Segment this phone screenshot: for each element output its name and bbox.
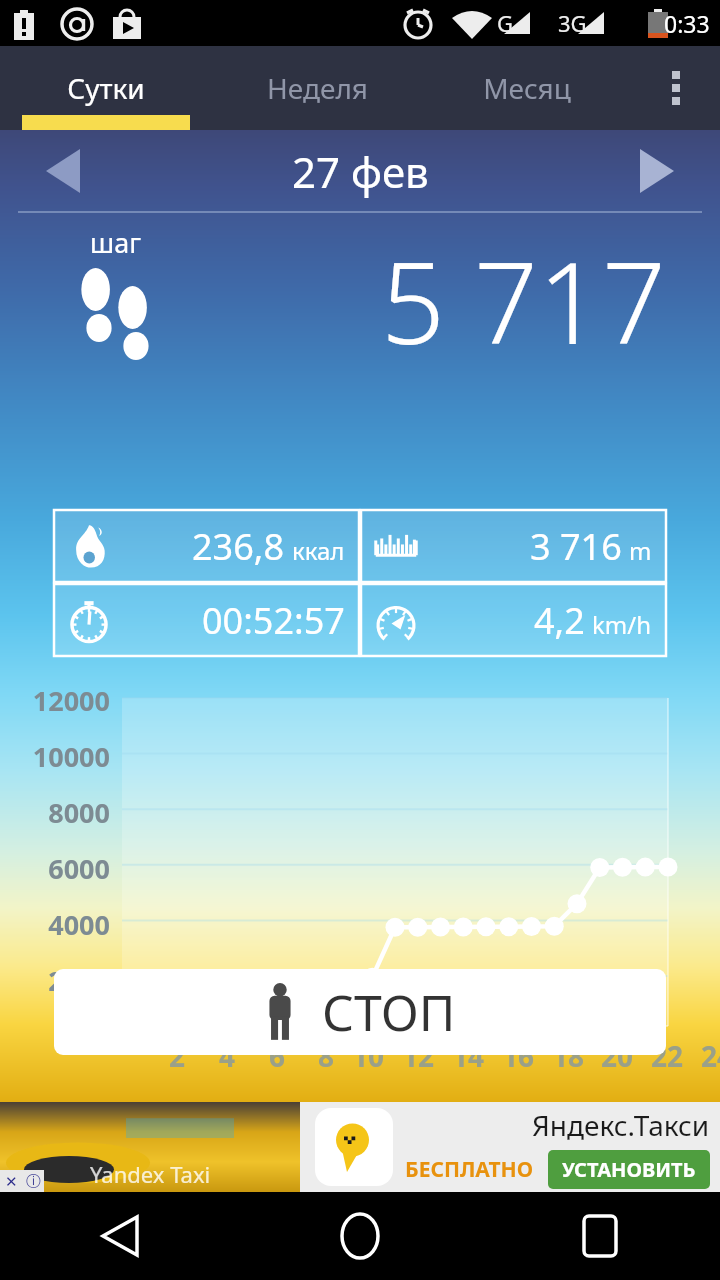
staticText: Месяц bbox=[483, 69, 571, 107]
button[interactable]: Сутки bbox=[0, 46, 212, 130]
staticText: 8 bbox=[318, 1037, 335, 1075]
button[interactable]: СТОП bbox=[54, 969, 666, 1055]
button[interactable]: More options bbox=[632, 46, 720, 130]
staticText: 22 bbox=[651, 1037, 684, 1075]
staticText: 2000 bbox=[48, 962, 110, 999]
staticText: 4,2 bbox=[534, 596, 585, 645]
staticText: 10000 bbox=[32, 738, 110, 775]
staticText: 12000 bbox=[32, 682, 110, 719]
staticText: 6000 bbox=[48, 850, 110, 887]
button[interactable]: УСТАНОВИТЬ bbox=[548, 1150, 710, 1189]
staticText: 16 bbox=[502, 1037, 535, 1075]
staticText: km/h bbox=[592, 608, 652, 641]
staticText: 6 bbox=[269, 1037, 286, 1075]
button[interactable]: Next day bbox=[622, 136, 692, 206]
staticText: Яндекс.Такси bbox=[532, 1106, 710, 1144]
staticText: 10 bbox=[352, 1037, 385, 1075]
button[interactable]: Recent apps bbox=[480, 1192, 720, 1280]
staticText: 18 bbox=[552, 1037, 585, 1075]
staticText: УСТАНОВИТЬ bbox=[562, 1156, 696, 1183]
button[interactable]: Yandex Taxi bbox=[0, 1102, 720, 1192]
staticText: 2 bbox=[169, 1037, 186, 1075]
staticText: 27 фев bbox=[292, 143, 429, 200]
staticText: СТОП bbox=[322, 978, 456, 1046]
staticText: шаг bbox=[90, 224, 141, 261]
button[interactable]: Previous day bbox=[28, 136, 98, 206]
staticText: 8000 bbox=[48, 794, 110, 831]
button[interactable]: Неделя bbox=[212, 46, 422, 130]
staticText: 14 bbox=[452, 1037, 485, 1075]
staticText: 24 bbox=[701, 1037, 720, 1075]
button[interactable]: 3 716 bbox=[361, 510, 666, 582]
staticText: 236,8 bbox=[192, 522, 285, 571]
staticText: 5 717 bbox=[381, 224, 666, 370]
button[interactable]: 00:52:57 bbox=[54, 584, 359, 656]
staticText: ккал bbox=[292, 534, 345, 567]
button[interactable]: Close ad bbox=[0, 1170, 22, 1192]
staticText: БЕСПЛАТНО bbox=[405, 1155, 534, 1184]
staticText: 12 bbox=[402, 1037, 435, 1075]
staticText: ⓘ bbox=[26, 1172, 41, 1191]
button[interactable]: 4,2 bbox=[361, 584, 666, 656]
staticText: 0:33 bbox=[664, 8, 710, 39]
staticText: 20 bbox=[601, 1037, 634, 1075]
staticText: G bbox=[497, 8, 514, 38]
staticText: 00:52:57 bbox=[202, 596, 345, 645]
staticText: Неделя bbox=[267, 69, 368, 107]
button[interactable]: 236,8 bbox=[54, 510, 359, 582]
staticText: Сутки bbox=[67, 69, 145, 107]
button[interactable]: Ad info bbox=[22, 1170, 44, 1192]
button[interactable]: Home bbox=[240, 1192, 480, 1280]
staticText: Yandex Taxi bbox=[90, 1159, 211, 1189]
staticText: ✕ bbox=[5, 1173, 18, 1190]
staticText: 3 716 bbox=[530, 522, 622, 571]
button[interactable]: Back bbox=[0, 1192, 240, 1280]
staticText: 4 bbox=[219, 1037, 236, 1075]
button[interactable]: Месяц bbox=[422, 46, 632, 130]
staticText: 4000 bbox=[48, 906, 110, 943]
staticText: 3G bbox=[558, 8, 587, 38]
staticText: m bbox=[629, 534, 652, 567]
